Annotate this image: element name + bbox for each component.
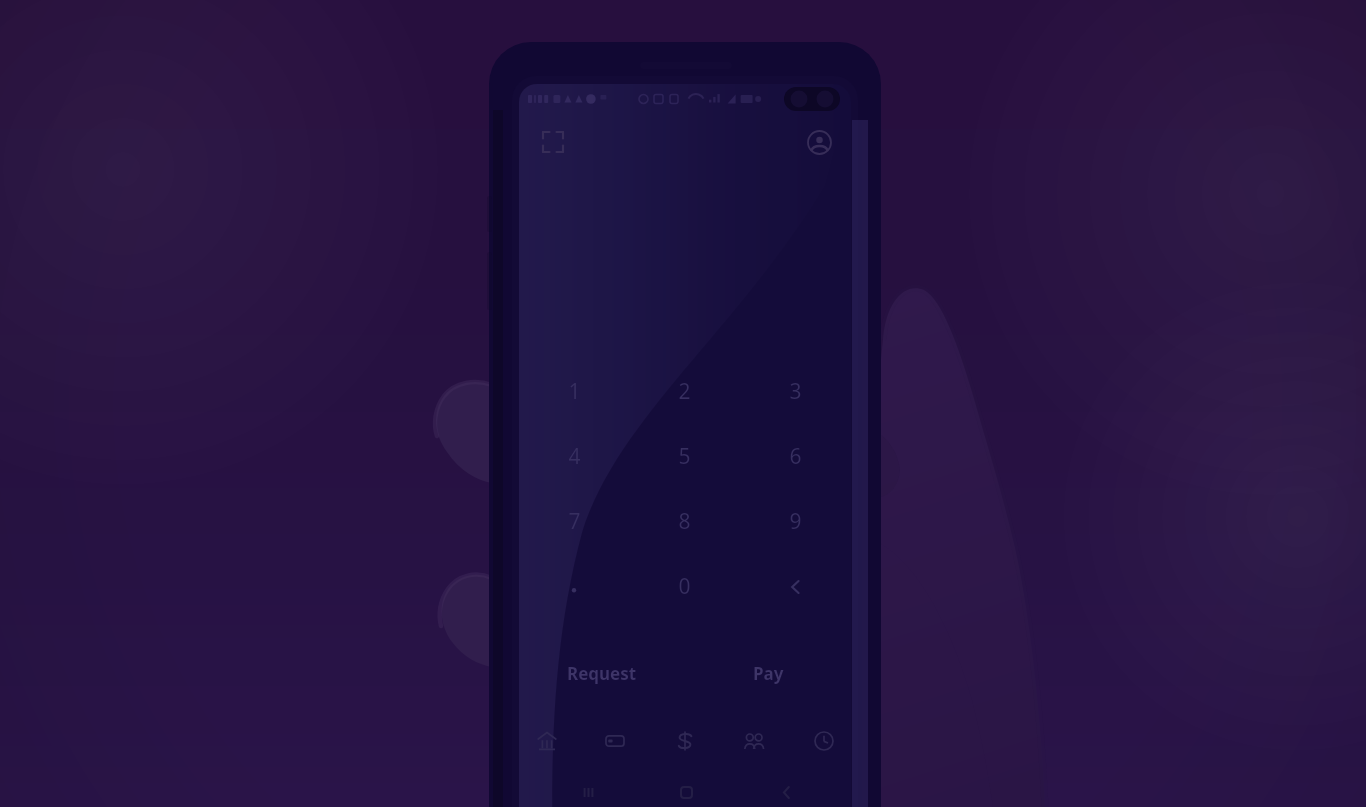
button[interactable]: 4: [519, 424, 629, 489]
staticText: Request: [567, 662, 637, 685]
staticText: 2: [678, 377, 691, 406]
button[interactable]: Pay: [685, 650, 851, 696]
button[interactable]: Profile: [801, 124, 837, 160]
staticText: 1: [568, 377, 581, 406]
staticText: 4: [568, 442, 581, 471]
staticText: 9: [789, 507, 802, 536]
button[interactable]: Pay: [661, 717, 709, 765]
button[interactable]: Banking: [523, 717, 571, 765]
button[interactable]: 7: [519, 489, 629, 554]
staticText: 5: [678, 442, 691, 471]
staticText: 6: [789, 442, 802, 471]
staticText: 8: [678, 507, 691, 536]
button[interactable]: Activity: [800, 717, 848, 765]
button[interactable]: Scan QR code: [535, 124, 571, 160]
staticText: 3: [789, 377, 802, 406]
staticText: Pay: [753, 662, 784, 685]
staticText: 7: [568, 507, 581, 536]
button[interactable]: Request: [519, 650, 685, 696]
button[interactable]: Decimal point: [519, 554, 629, 619]
button[interactable]: 5: [629, 424, 740, 489]
button[interactable]: 2: [629, 359, 740, 424]
button[interactable]: Contacts: [730, 717, 778, 765]
staticText: 0: [678, 572, 691, 601]
button[interactable]: Home: [670, 776, 702, 807]
button[interactable]: Card: [591, 717, 639, 765]
button[interactable]: 8: [629, 489, 740, 554]
button[interactable]: Recent apps: [572, 776, 604, 807]
